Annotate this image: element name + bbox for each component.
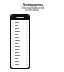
button[interactable] bbox=[11, 27, 29, 30]
staticText: in one simple place bbox=[25, 8, 39, 11]
button[interactable] bbox=[11, 30, 29, 33]
staticText: Recurring expenses bbox=[22, 2, 43, 6]
button[interactable] bbox=[11, 57, 29, 60]
button[interactable] bbox=[11, 63, 29, 66]
staticText: Track your subscriptions and bills bbox=[21, 6, 44, 9]
button[interactable] bbox=[11, 33, 29, 36]
button[interactable] bbox=[11, 60, 29, 63]
button[interactable] bbox=[11, 45, 29, 48]
button[interactable] bbox=[11, 51, 29, 54]
staticText: My expenses bbox=[16, 16, 24, 19]
button[interactable] bbox=[11, 42, 29, 45]
button[interactable] bbox=[11, 36, 29, 39]
button[interactable] bbox=[11, 24, 29, 27]
button[interactable] bbox=[11, 39, 29, 42]
button[interactable] bbox=[11, 48, 29, 51]
button[interactable] bbox=[11, 54, 29, 57]
button[interactable] bbox=[11, 21, 29, 24]
